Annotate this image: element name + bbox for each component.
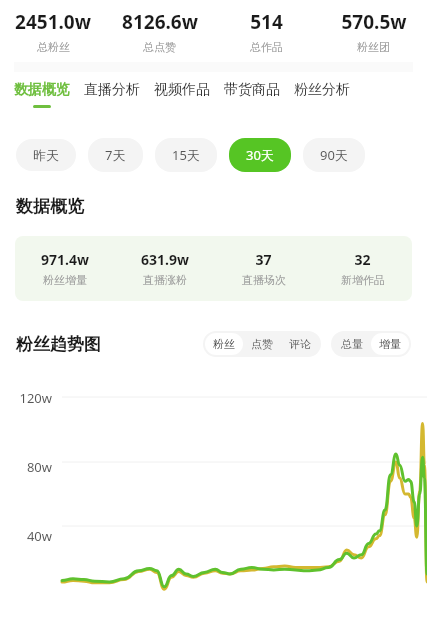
staticText: 30天 <box>246 146 274 164</box>
button[interactable]: 971.4w <box>15 250 115 287</box>
staticText: 带货商品 <box>224 81 280 99</box>
button[interactable]: 8126.6w <box>106 9 213 54</box>
staticText: 昨天 <box>33 147 59 163</box>
staticText: 514 <box>250 9 283 35</box>
button[interactable]: 7天 <box>88 138 143 172</box>
button[interactable]: 总量 <box>333 333 371 355</box>
staticText: 总量 <box>341 337 363 351</box>
button[interactable]: 30天 <box>229 138 291 172</box>
button[interactable]: 514 <box>213 9 320 54</box>
staticText: 90天 <box>320 146 348 164</box>
button[interactable]: 直播分析 <box>84 81 140 108</box>
staticText: 粉丝增量 <box>43 273 87 287</box>
staticText: 直播场次 <box>242 273 286 287</box>
button[interactable]: 971.4w <box>15 236 412 301</box>
staticText: 37 <box>255 250 272 269</box>
staticText: 2451.0w <box>15 9 91 35</box>
button[interactable]: 粉丝 <box>205 333 243 355</box>
button[interactable]: 评论 <box>281 333 319 355</box>
button[interactable]: 增量 <box>371 333 409 355</box>
button[interactable]: 15天 <box>155 138 217 172</box>
button[interactable]: 数据概览 <box>14 81 70 108</box>
staticText: 120w <box>19 389 52 407</box>
other: 粉丝趋势图表 <box>0 375 427 632</box>
staticText: 总作品 <box>250 40 283 54</box>
button[interactable]: 昨天 <box>16 139 76 171</box>
button[interactable]: 570.5w <box>320 9 427 54</box>
staticText: 总点赞 <box>143 40 176 54</box>
staticText: 新增作品 <box>341 273 385 287</box>
staticText: 粉丝 <box>213 337 235 351</box>
staticText: 直播分析 <box>84 81 140 99</box>
staticText: 视频作品 <box>154 81 210 99</box>
button[interactable]: 2451.0w <box>0 9 106 54</box>
staticText: 评论 <box>289 337 311 351</box>
staticText: 40w <box>26 527 52 545</box>
staticText: 粉丝趋势图 <box>16 334 101 355</box>
staticText: 80w <box>26 458 52 476</box>
button[interactable]: 37 <box>214 250 313 287</box>
button[interactable]: 点赞 <box>243 333 281 355</box>
staticText: 增量 <box>379 337 401 351</box>
staticText: 粉丝团 <box>357 40 390 54</box>
staticText: 8126.6w <box>122 9 198 35</box>
staticText: 7天 <box>105 146 126 164</box>
staticText: 数据概览 <box>16 196 84 217</box>
staticText: 631.9w <box>141 250 189 269</box>
staticText: 粉丝分析 <box>294 81 350 99</box>
staticText: 971.4w <box>41 250 89 269</box>
staticText: 直播涨粉 <box>143 273 187 287</box>
staticText: 15天 <box>172 146 200 164</box>
button[interactable]: 带货商品 <box>224 81 280 108</box>
staticText: 32 <box>354 250 371 269</box>
button[interactable]: 32 <box>313 250 412 287</box>
staticText: 数据概览 <box>14 81 70 99</box>
staticText: 总粉丝 <box>37 40 70 54</box>
button[interactable]: 视频作品 <box>154 81 210 108</box>
staticText: 点赞 <box>251 337 273 351</box>
button[interactable]: 粉丝分析 <box>294 81 350 108</box>
staticText: 570.5w <box>341 9 407 35</box>
button[interactable]: 90天 <box>303 138 365 172</box>
button[interactable]: 631.9w <box>115 250 214 287</box>
